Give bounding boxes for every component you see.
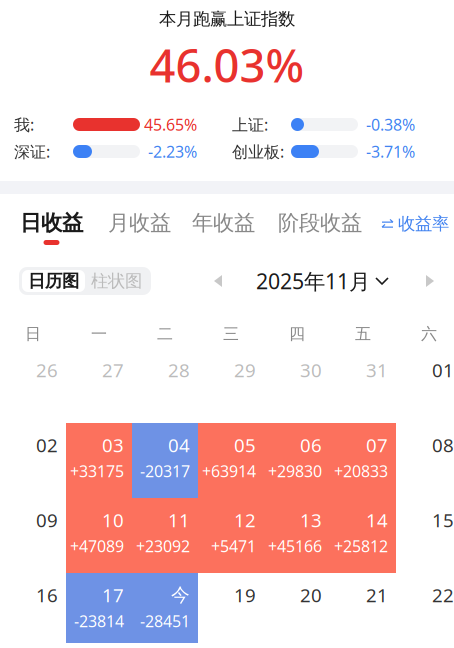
staticText: 20 [300,583,322,607]
staticText: -2.23% [148,141,197,162]
staticText: +47089 [70,535,124,557]
button[interactable]: 09 [0,498,66,573]
button[interactable]: 30 [264,348,330,423]
button[interactable]: 13 [264,498,330,573]
button[interactable]: 07 [330,423,396,498]
button[interactable]: 下个月 [424,274,435,288]
staticText: 上证: [232,114,268,135]
staticText: 45.65% [144,114,197,135]
button[interactable]: 10 [66,498,132,573]
button[interactable]: 阶段收益 [278,213,362,245]
button[interactable]: 05 [198,423,264,498]
button[interactable]: 今 [132,573,198,643]
button[interactable]: 收益率 [381,213,449,245]
button[interactable]: 日收益 [20,213,83,245]
button[interactable]: 08 [396,423,454,498]
button[interactable]: 19 [198,573,264,643]
staticText: 11 [168,508,190,532]
staticText: 创业板: [232,141,284,162]
staticText: -23814 [74,610,124,632]
staticText: 27 [102,358,124,382]
button[interactable]: 16 [0,573,66,643]
staticText: 13 [300,508,322,532]
staticText: 2025年11月 [256,267,370,295]
button[interactable]: 02 [0,423,66,498]
staticText: 29 [234,358,256,382]
button[interactable]: 06 [264,423,330,498]
button[interactable]: 14 [330,498,396,573]
staticText: 28 [168,358,190,382]
staticText: 本月跑赢上证指数 [159,8,295,30]
button[interactable]: 20 [264,573,330,643]
button[interactable]: 26 [0,348,66,423]
staticText: 我: [14,114,34,135]
button[interactable]: 11 [132,498,198,573]
staticText: 17 [102,583,124,607]
staticText: +25812 [334,535,388,557]
button[interactable]: 29 [198,348,264,423]
button[interactable]: 日历图 [22,270,85,292]
button[interactable]: 03 [66,423,132,498]
staticText: 二 [157,324,173,344]
button[interactable]: 12 [198,498,264,573]
staticText: 14 [366,508,388,532]
button[interactable]: 2025年11月 [256,267,389,295]
staticText: +29830 [268,460,322,482]
button[interactable]: 上个月 [213,274,224,288]
staticText: 26 [36,358,58,382]
staticText: +23092 [136,535,190,557]
staticText: 07 [366,433,388,457]
button[interactable]: 01 [396,348,454,423]
staticText: 01 [432,358,454,382]
button[interactable]: 27 [66,348,132,423]
staticText: 五 [355,324,371,344]
button[interactable]: 28 [132,348,198,423]
staticText: 31 [366,358,388,382]
staticText: 12 [234,508,256,532]
button[interactable]: 21 [330,573,396,643]
button[interactable]: 年收益 [192,213,255,245]
staticText: 收益率 [398,213,449,234]
button[interactable]: 柱状图 [85,270,148,292]
staticText: 04 [168,433,190,457]
staticText: 年收益 [192,210,255,236]
staticText: 阶段收益 [278,210,362,236]
staticText: 08 [432,433,454,457]
button[interactable]: 17 [66,573,132,643]
staticText: 15 [432,508,454,532]
staticText: 16 [36,583,58,607]
staticText: 22 [432,583,454,607]
staticText: -28451 [140,610,190,632]
staticText: 日历图 [28,270,79,292]
button[interactable]: 04 [132,423,198,498]
button[interactable]: 22 [396,573,454,643]
staticText: 月收益 [108,210,171,236]
staticText: 一 [91,324,107,344]
staticText: 10 [102,508,124,532]
button[interactable]: 31 [330,348,396,423]
staticText: +63914 [202,460,256,482]
button[interactable]: 15 [396,498,454,573]
staticText: 21 [366,583,388,607]
staticText: -0.38% [366,114,415,135]
button[interactable]: 月收益 [108,213,171,245]
staticText: -20317 [140,460,190,482]
staticText: 19 [234,583,256,607]
staticText: 柱状图 [91,270,142,292]
staticText: +45166 [268,535,322,557]
staticText: 四 [289,324,305,344]
staticText: -3.71% [366,141,415,162]
